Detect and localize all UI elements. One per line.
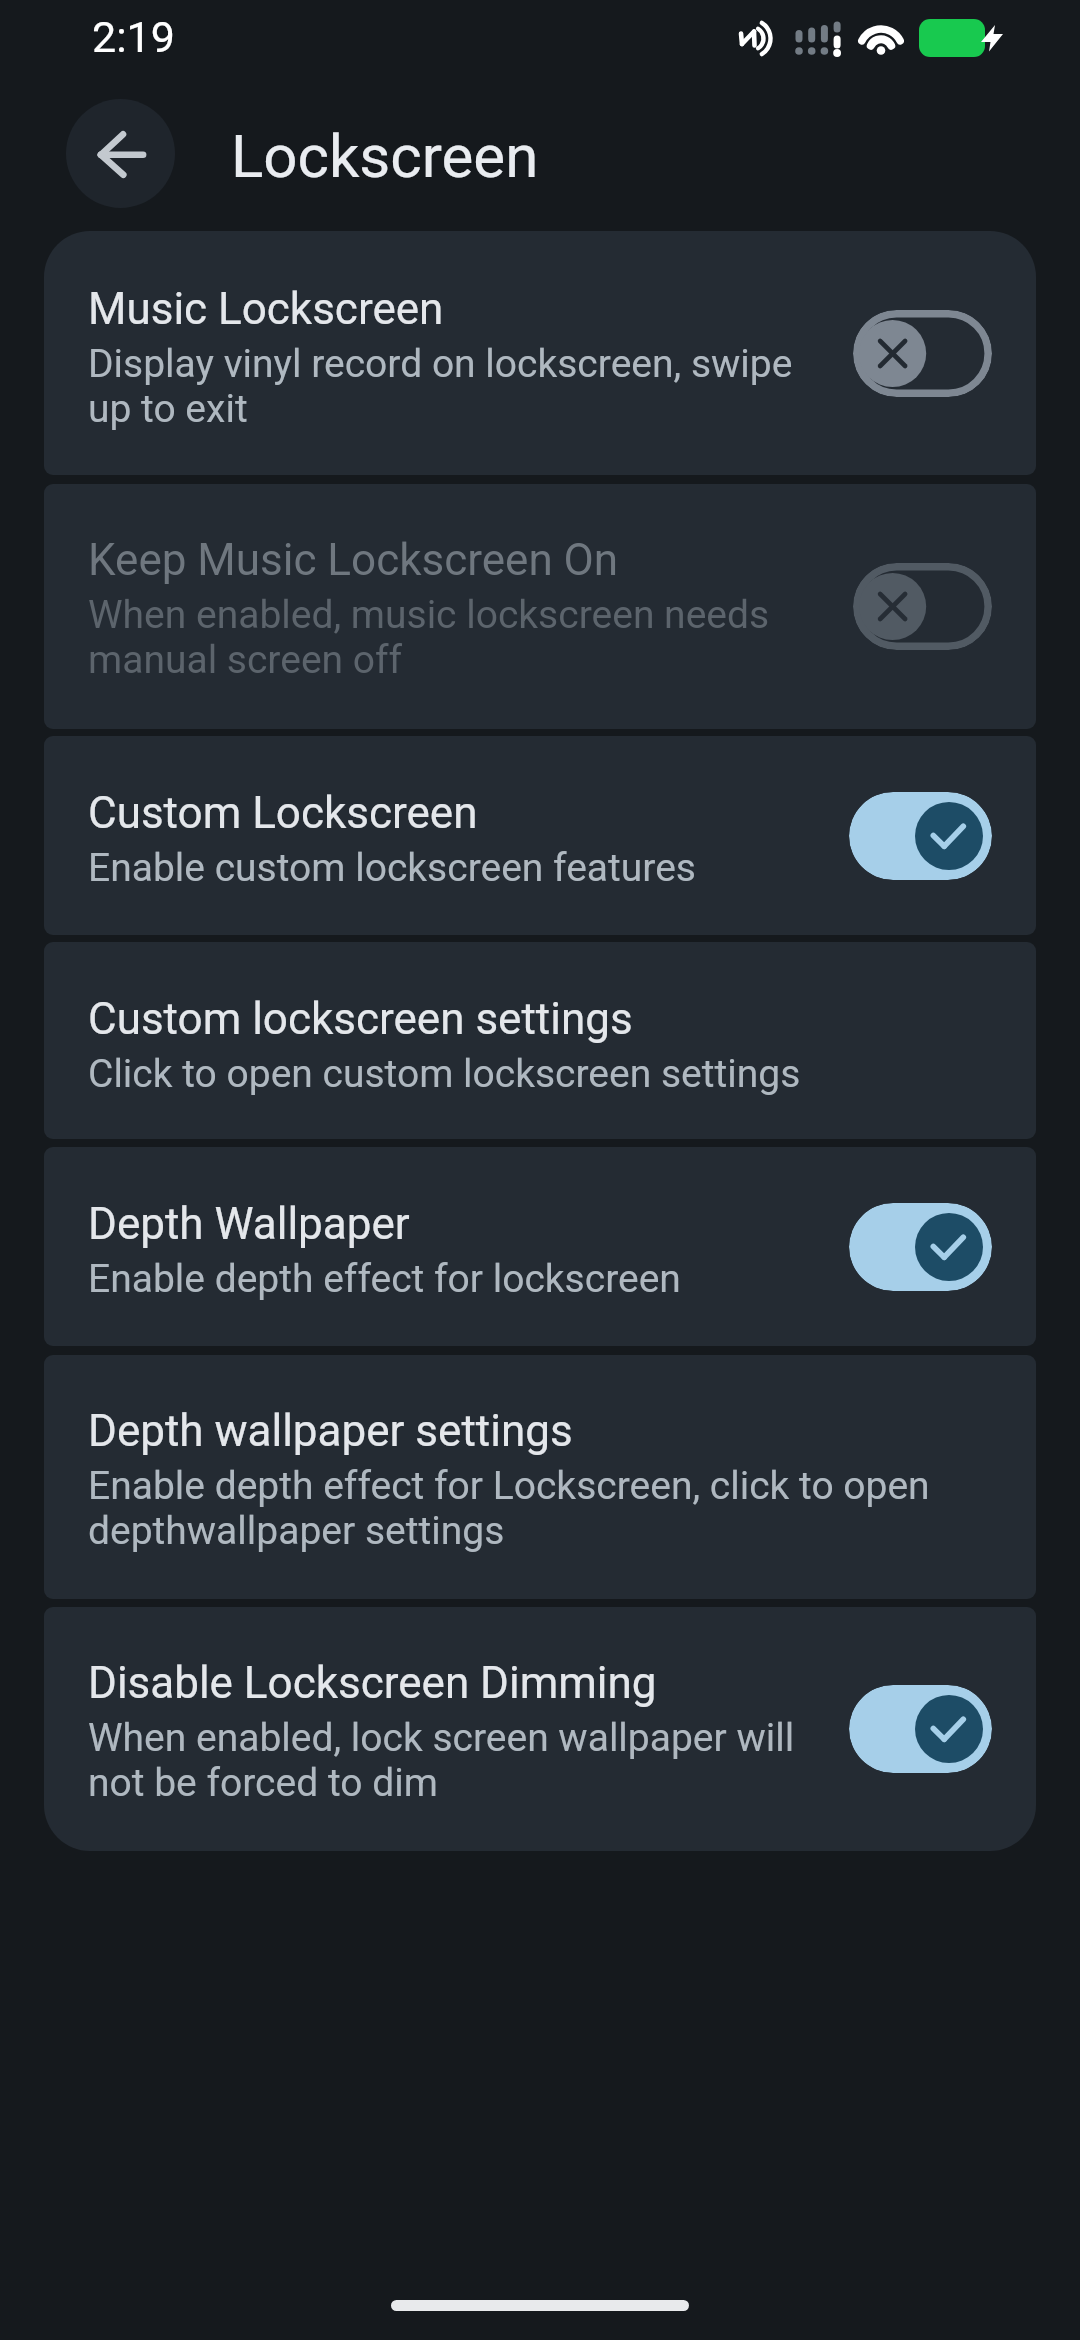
button[interactable]: Custom Lockscreen: [44, 736, 1036, 935]
staticText: Click to open custom lockscreen settings: [88, 1051, 998, 1096]
staticText: 2:19: [92, 12, 175, 62]
button[interactable]: Music Lockscreen, off: [853, 310, 992, 397]
staticText: Enable depth effect for Lockscreen, clic…: [88, 1463, 998, 1553]
button[interactable]: Back: [66, 99, 175, 208]
button[interactable]: Depth Wallpaper, on: [849, 1203, 992, 1291]
staticText: Custom Lockscreen: [88, 779, 828, 841]
staticText: When enabled, music lockscreen needs man…: [88, 592, 828, 682]
button[interactable]: Keep Music Lockscreen On: [44, 484, 1036, 729]
staticText: Depth wallpaper settings: [88, 1397, 998, 1459]
staticText: When enabled, lock screen wallpaper will…: [88, 1715, 828, 1805]
staticText: Keep Music Lockscreen On: [88, 526, 828, 588]
staticText: Disable Lockscreen Dimming: [88, 1649, 828, 1711]
staticText: Music Lockscreen: [88, 275, 828, 337]
button[interactable]: Music Lockscreen: [44, 231, 1036, 475]
button[interactable]: Custom Lockscreen, on: [849, 792, 992, 880]
button[interactable]: Depth Wallpaper: [44, 1147, 1036, 1346]
staticText: Enable depth effect for lockscreen: [88, 1256, 828, 1301]
button[interactable]: Disable Lockscreen Dimming: [44, 1607, 1036, 1851]
staticText: Depth Wallpaper: [88, 1190, 828, 1252]
staticText: Display vinyl record on lockscreen, swip…: [88, 341, 828, 431]
staticText: Lockscreen: [231, 122, 539, 192]
staticText: Custom lockscreen settings: [88, 985, 998, 1047]
staticText: Enable custom lockscreen features: [88, 845, 828, 890]
button[interactable]: Disable Lockscreen Dimming, on: [849, 1685, 992, 1773]
button[interactable]: Depth wallpaper settings: [44, 1355, 1036, 1599]
button[interactable]: Custom lockscreen settings: [44, 942, 1036, 1139]
button[interactable]: Keep Music Lockscreen On, off: [853, 563, 992, 650]
